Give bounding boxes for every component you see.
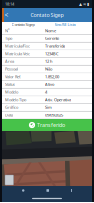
staticText: 18:14 bbox=[5, 1, 14, 7]
staticText: Matrícula/Fisc bbox=[5, 43, 30, 49]
staticText: Matrícula Veic bbox=[5, 51, 30, 56]
staticText: Nome bbox=[45, 28, 56, 33]
button[interactable]: Back bbox=[20, 187, 26, 194]
staticText: Não bbox=[45, 66, 52, 72]
staticText: Ativ. Operativa bbox=[45, 97, 71, 102]
staticText: Área bbox=[5, 59, 14, 64]
staticText: ▲ ≋ ▮ bbox=[79, 2, 89, 6]
staticText: 1.852,00 bbox=[45, 74, 59, 79]
staticText: Contato Sigep bbox=[30, 11, 63, 19]
button[interactable]: Back bbox=[2, 8, 11, 22]
button[interactable]: Recents bbox=[69, 187, 74, 194]
staticText: 1234BC bbox=[45, 51, 59, 56]
staticText: Pessoal bbox=[5, 66, 18, 72]
staticText: Sim bbox=[45, 105, 52, 110]
staticText: Transferido bbox=[37, 121, 65, 129]
staticText: Nº bbox=[5, 28, 10, 33]
staticText: Modelo bbox=[5, 89, 18, 95]
staticText: Transferida bbox=[45, 43, 65, 49]
staticText: Valor Ref. bbox=[5, 74, 21, 79]
button[interactable]: Transferido bbox=[2, 119, 92, 131]
staticText: Gráfico bbox=[5, 105, 18, 110]
button[interactable]: Home bbox=[44, 187, 51, 194]
staticText: Modelo Tipo bbox=[5, 97, 26, 102]
staticText: Sinc/SE Lista bbox=[54, 22, 75, 27]
staticText: 09/09/2025 bbox=[45, 112, 63, 118]
staticText: Status bbox=[5, 82, 15, 87]
staticText: Data bbox=[5, 112, 13, 118]
button[interactable]: Contato Sigep bbox=[2, 22, 44, 27]
staticText: < bbox=[4, 11, 8, 19]
staticText: Contato Sigep bbox=[11, 22, 34, 27]
staticText: 4 bbox=[45, 89, 47, 95]
staticText: 12 h bbox=[45, 59, 52, 64]
staticText: Tipo bbox=[5, 36, 12, 41]
button[interactable]: Sinc/SE Lista bbox=[44, 22, 86, 27]
staticText: Ativo bbox=[45, 82, 54, 87]
staticText: Gerente bbox=[45, 36, 59, 41]
